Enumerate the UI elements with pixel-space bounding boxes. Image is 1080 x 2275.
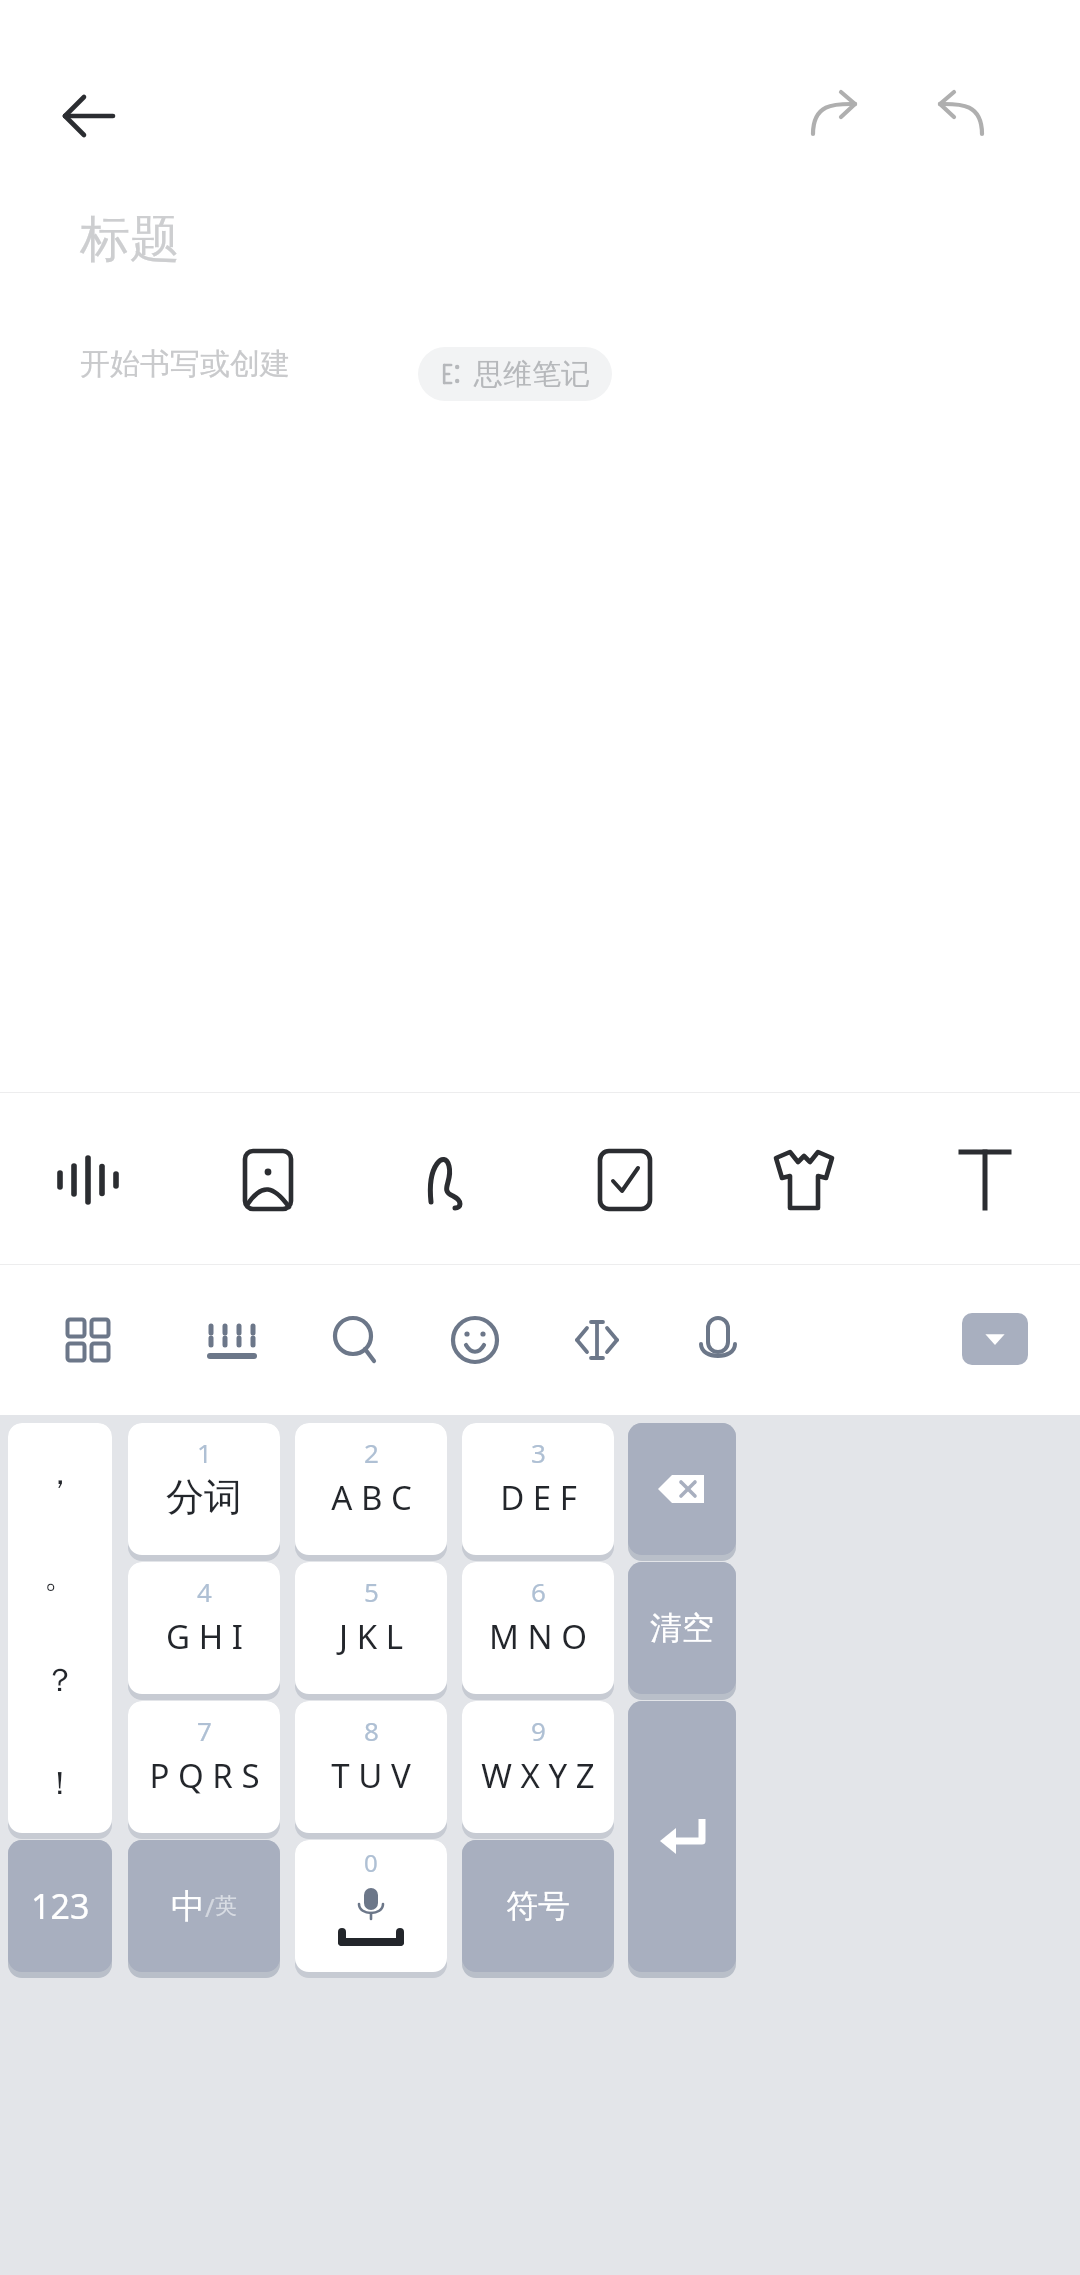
button[interactable]: 123 (8, 1840, 112, 1972)
button[interactable]: 清空 (628, 1562, 736, 1694)
staticText: ？ (44, 1660, 76, 1700)
staticText: 2 (364, 1435, 379, 1470)
staticText: 英 (215, 1892, 237, 1920)
button[interactable]: 1 (128, 1423, 280, 1555)
button[interactable]: 0 (295, 1840, 447, 1972)
staticText: 6 (531, 1574, 546, 1609)
staticText: M N O (489, 1614, 587, 1659)
staticText: 5 (364, 1574, 379, 1609)
button[interactable]: 思维笔记 (418, 347, 612, 401)
staticText: 思维笔记 (474, 356, 590, 393)
staticText: W X Y Z (481, 1753, 595, 1798)
button[interactable]: 6 (462, 1562, 614, 1694)
button[interactable]: 2 (295, 1423, 447, 1555)
staticText: 123 (31, 1883, 90, 1929)
staticText: 中 (171, 1885, 205, 1928)
button[interactable]: Checklist (570, 1125, 680, 1235)
staticText: 清空 (650, 1608, 714, 1648)
staticText: / (205, 1889, 215, 1924)
button[interactable] (628, 1701, 736, 1972)
button[interactable]: Hide keyboard (962, 1313, 1028, 1365)
button[interactable]: 中 (128, 1840, 280, 1972)
button[interactable]: 符号 (462, 1840, 614, 1972)
staticText: 3 (531, 1435, 546, 1470)
button[interactable]: Voice input (670, 1292, 766, 1388)
staticText: ， (44, 1453, 76, 1493)
staticText: 标题 (80, 208, 180, 271)
staticText: 9 (531, 1713, 546, 1748)
button[interactable]: Layout (40, 1292, 136, 1388)
staticText: A B C (331, 1475, 412, 1520)
staticText: 7 (197, 1713, 212, 1748)
button[interactable]: Handwriting (392, 1125, 502, 1235)
button[interactable]: Search (307, 1292, 403, 1388)
staticText: 0 (364, 1846, 378, 1879)
button[interactable]: ， (8, 1423, 112, 1833)
staticText: T U V (331, 1753, 411, 1798)
button[interactable]: Move cursor (549, 1292, 645, 1388)
button[interactable]: 8 (295, 1701, 447, 1833)
button[interactable]: Text format (930, 1125, 1040, 1235)
staticText: 符号 (506, 1886, 570, 1926)
staticText: 分词 (166, 1473, 242, 1521)
button[interactable]: Image (213, 1125, 323, 1235)
staticText: J K L (339, 1614, 403, 1659)
staticText: 4 (197, 1574, 212, 1609)
button[interactable]: Keyboard (184, 1292, 280, 1388)
button[interactable]: Voice (33, 1125, 143, 1235)
button[interactable] (628, 1423, 736, 1555)
button[interactable]: Back (46, 73, 132, 159)
staticText: G H I (166, 1614, 243, 1659)
staticText: 1 (197, 1435, 212, 1470)
staticText: 开始书写或创建 (80, 345, 290, 383)
button[interactable]: 7 (128, 1701, 280, 1833)
staticText: P Q R S (149, 1753, 260, 1798)
button[interactable]: 4 (128, 1562, 280, 1694)
button[interactable]: 3 (462, 1423, 614, 1555)
button[interactable]: Emoji (427, 1292, 523, 1388)
button[interactable]: Redo (917, 73, 1003, 159)
button[interactable]: 9 (462, 1701, 614, 1833)
staticText: D E F (500, 1475, 577, 1520)
button[interactable]: Template (749, 1125, 859, 1235)
staticText: ！ (44, 1763, 76, 1803)
button[interactable]: Undo (792, 73, 878, 159)
button[interactable]: 5 (295, 1562, 447, 1694)
staticText: 8 (364, 1713, 379, 1748)
staticText: 。 (44, 1556, 76, 1596)
